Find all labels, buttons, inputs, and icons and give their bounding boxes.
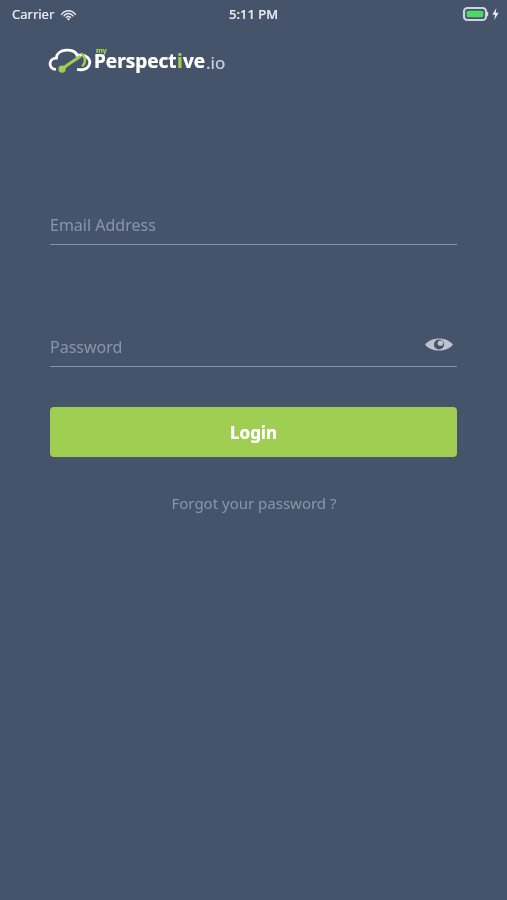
staticText: Email Address: [50, 214, 156, 236]
staticText: i: [177, 48, 183, 74]
staticText: Perspect: [94, 48, 177, 74]
staticText: Login: [230, 421, 278, 444]
button[interactable]: Password: [50, 327, 457, 367]
staticText: 5:11 PM: [229, 5, 279, 23]
button[interactable]: Login: [50, 407, 457, 457]
staticText: Forgot your password ?: [171, 493, 337, 513]
staticText: ve: [183, 48, 206, 74]
staticText: Password: [50, 336, 123, 358]
staticText: .io: [206, 51, 226, 74]
button[interactable]: Email Address: [50, 205, 457, 245]
button[interactable]: Forgot your password ?: [163, 489, 345, 517]
staticText: my: [96, 46, 107, 56]
staticText: Carrier: [12, 5, 55, 23]
button[interactable]: Show password: [421, 329, 457, 359]
